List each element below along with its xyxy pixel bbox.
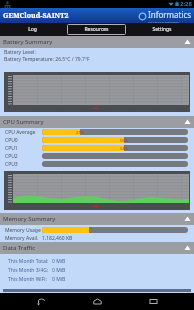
staticText: 0 MiB (52, 267, 66, 274)
staticText: Resources (84, 26, 109, 33)
staticText: This Month 3/4G: (8, 267, 52, 274)
button[interactable]: Data Traffic (0, 242, 194, 254)
staticText: CPU Summary (3, 118, 44, 126)
staticText: 0% (42, 154, 44, 159)
staticText: This Month WiFi: (8, 276, 52, 283)
staticText: Memory Avail. (5, 235, 42, 242)
staticText: 1,182,460 KB (42, 235, 73, 242)
button[interactable]: Log (3, 24, 61, 35)
button[interactable]: Recents (138, 293, 168, 310)
button[interactable]: Battery Summary (0, 36, 194, 48)
staticText: Log (28, 26, 37, 33)
staticText: Informatics (148, 9, 192, 20)
button[interactable]: Resources (67, 24, 126, 35)
staticText: 56% (120, 138, 128, 143)
staticText: CPU3 (5, 161, 42, 168)
staticText: This Month Total: (8, 258, 52, 265)
staticText: Settings (152, 26, 172, 33)
staticText: Memory Usage (5, 227, 42, 234)
button[interactable]: Home (82, 293, 112, 310)
staticText: Battery Temperature: 26.5°C / 79.7°F (4, 56, 90, 63)
button[interactable]: Settings (132, 24, 191, 35)
staticText: GEMCloud-SAINT2 (3, 11, 69, 21)
staticText: 0 MiB (52, 258, 66, 265)
staticText: 2:28 (180, 0, 192, 8)
staticText: Memory Summary (3, 215, 56, 223)
staticText: 54% (120, 146, 128, 151)
staticText: CPU Average (5, 129, 42, 136)
staticText: 27% (76, 130, 84, 135)
staticText: Data Traffic (3, 244, 36, 252)
button[interactable]: Back (26, 293, 56, 310)
button[interactable]: CPU Summary (0, 116, 194, 128)
staticText: 0 MiB (52, 276, 66, 283)
staticText: 0% (42, 162, 44, 167)
staticText: the science of information (148, 20, 179, 23)
staticText: Battery Level: (4, 49, 36, 56)
staticText: CPU0 (5, 137, 42, 144)
staticText: Battery Summary (3, 38, 53, 46)
button[interactable]: Memory Summary (0, 213, 194, 225)
staticText: CPU2 (5, 153, 42, 160)
staticText: CPU1 (5, 145, 42, 152)
